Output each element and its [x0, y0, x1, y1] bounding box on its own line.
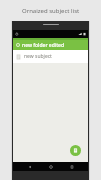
button[interactable]: Add subject: [70, 145, 81, 156]
staticText: Ornaized subject list: [22, 7, 80, 15]
button[interactable]: Back: [25, 162, 34, 171]
button[interactable]: new folder edited: [13, 40, 88, 50]
button[interactable]: Home: [46, 162, 55, 171]
staticText: new subject: [24, 53, 52, 60]
staticText: new folder edited: [22, 42, 65, 49]
button[interactable]: Recent apps: [67, 162, 76, 171]
button[interactable]: new subject: [13, 50, 88, 63]
